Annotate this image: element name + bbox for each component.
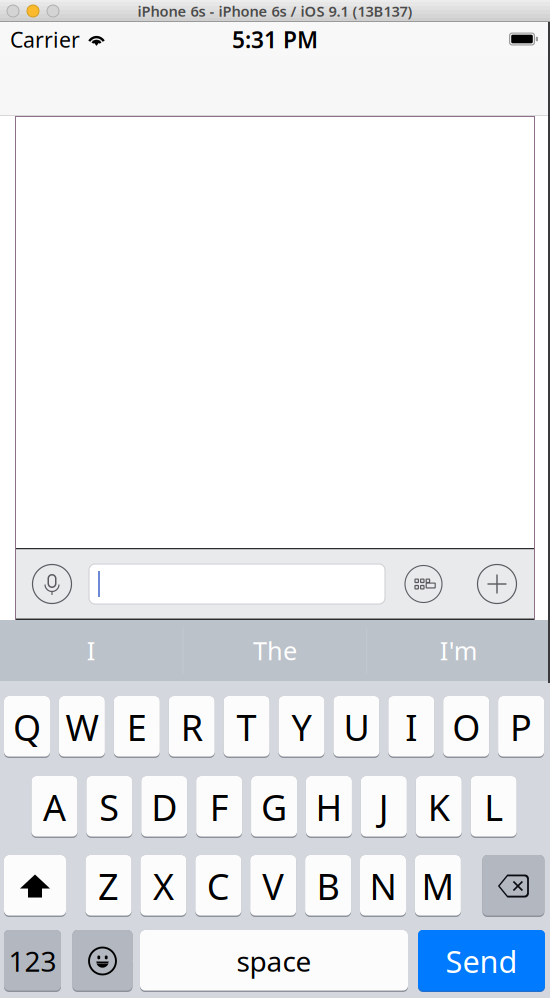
staticText: O bbox=[452, 703, 480, 751]
button[interactable]: Emoji bbox=[72, 930, 132, 992]
staticText: space bbox=[236, 942, 311, 980]
staticText: X bbox=[153, 862, 174, 910]
button[interactable]: Delete bbox=[482, 855, 544, 917]
staticText: Carrier bbox=[10, 25, 80, 54]
staticText: iPhone 6s - iPhone 6s / iOS 9.1 (13B137) bbox=[137, 1, 412, 21]
button[interactable]: Y bbox=[278, 696, 324, 758]
button[interactable]: J bbox=[361, 776, 407, 838]
staticText: D bbox=[151, 783, 177, 831]
staticText: M bbox=[421, 862, 454, 910]
staticText: I bbox=[87, 634, 96, 667]
button[interactable]: C bbox=[195, 855, 241, 917]
button[interactable]: O bbox=[443, 696, 489, 758]
button[interactable]: E bbox=[114, 696, 160, 758]
button[interactable]: 123 bbox=[4, 930, 61, 992]
button[interactable]: Add attachment bbox=[480, 567, 514, 601]
staticText: The bbox=[253, 634, 297, 667]
button[interactable]: X bbox=[140, 855, 186, 917]
button[interactable]: Send bbox=[418, 930, 545, 992]
button[interactable]: H bbox=[306, 776, 352, 838]
button[interactable]: V bbox=[250, 855, 296, 917]
button[interactable]: The bbox=[184, 620, 366, 681]
staticText: W bbox=[65, 703, 98, 751]
staticText: S bbox=[99, 783, 119, 831]
button[interactable]: L bbox=[471, 776, 517, 838]
button[interactable]: space bbox=[140, 930, 408, 992]
button[interactable]: N bbox=[360, 855, 406, 917]
staticText: 5:31 PM bbox=[232, 24, 318, 54]
staticText: J bbox=[379, 783, 389, 831]
staticText: V bbox=[262, 862, 284, 910]
button[interactable]: A bbox=[31, 776, 77, 838]
button[interactable]: Z bbox=[85, 855, 131, 917]
button[interactable]: G bbox=[251, 776, 297, 838]
button[interactable]: K bbox=[416, 776, 462, 838]
staticText: N bbox=[369, 862, 396, 910]
staticText: E bbox=[127, 703, 147, 751]
staticText: K bbox=[428, 783, 450, 831]
staticText: T bbox=[237, 703, 257, 751]
button[interactable]: I bbox=[0, 620, 183, 681]
button[interactable]: Keyboard bbox=[405, 565, 442, 602]
staticText: R bbox=[181, 703, 203, 751]
button[interactable]: Dictate bbox=[33, 565, 71, 603]
button[interactable]: T bbox=[224, 696, 270, 758]
staticText: I'm bbox=[440, 634, 478, 667]
staticText: Y bbox=[291, 703, 311, 751]
button[interactable]: M bbox=[415, 855, 461, 917]
staticText: H bbox=[315, 783, 342, 831]
button[interactable]: F bbox=[196, 776, 242, 838]
button[interactable]: P bbox=[498, 696, 544, 758]
staticText: A bbox=[43, 783, 66, 831]
button[interactable] bbox=[89, 564, 385, 604]
button[interactable]: Q bbox=[4, 696, 50, 758]
button[interactable]: D bbox=[141, 776, 187, 838]
staticText: C bbox=[207, 862, 230, 910]
staticText: U bbox=[343, 703, 369, 751]
staticText: L bbox=[484, 783, 503, 831]
staticText: P bbox=[510, 703, 532, 751]
staticText: Send bbox=[445, 941, 517, 981]
button[interactable]: S bbox=[86, 776, 132, 838]
button[interactable]: B bbox=[305, 855, 351, 917]
staticText: G bbox=[261, 783, 287, 831]
button[interactable]: R bbox=[169, 696, 215, 758]
staticText: 123 bbox=[8, 942, 56, 980]
staticText: B bbox=[317, 862, 340, 910]
staticText: Z bbox=[98, 862, 119, 910]
button[interactable]: I'm bbox=[367, 620, 550, 681]
staticText: I bbox=[405, 703, 417, 751]
button[interactable]: Shift bbox=[4, 855, 66, 917]
button[interactable]: W bbox=[59, 696, 105, 758]
button[interactable]: I bbox=[388, 696, 434, 758]
staticText: F bbox=[210, 783, 229, 831]
button[interactable]: U bbox=[333, 696, 379, 758]
staticText: Q bbox=[13, 703, 41, 751]
